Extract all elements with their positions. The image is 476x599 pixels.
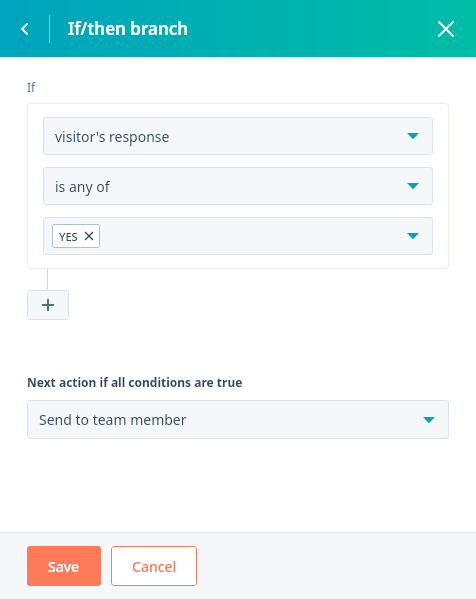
staticText: Save <box>48 557 80 576</box>
staticText: Next action if all conditions are true <box>27 374 243 390</box>
button[interactable]: Back <box>6 10 44 48</box>
button[interactable]: YES <box>43 217 433 255</box>
staticText: Cancel <box>132 557 177 576</box>
button[interactable]: Send to team member <box>27 400 449 439</box>
button[interactable]: Close <box>428 11 464 47</box>
button[interactable]: YES <box>52 224 100 248</box>
button[interactable]: Cancel <box>111 546 197 586</box>
staticText: Send to team member <box>39 410 187 429</box>
button[interactable]: is any of <box>43 167 433 205</box>
staticText: YES <box>59 229 78 244</box>
button[interactable]: Save <box>27 546 101 586</box>
button[interactable]: visitor's response <box>43 117 433 155</box>
staticText: visitor's response <box>55 127 170 146</box>
button[interactable]: Add condition <box>27 290 69 320</box>
staticText: If/then branch <box>68 17 189 40</box>
staticText: If <box>27 79 36 95</box>
staticText: is any of <box>55 177 110 196</box>
